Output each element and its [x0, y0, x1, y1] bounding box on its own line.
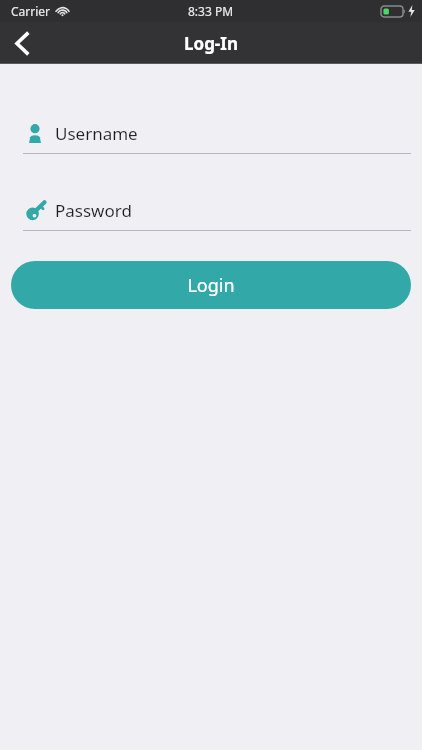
staticText: Username	[55, 122, 138, 145]
button[interactable]: Username	[0, 121, 422, 154]
staticText: 8:33 PM	[188, 3, 234, 19]
button[interactable]: Password	[0, 198, 422, 231]
button[interactable]: Back	[0, 22, 44, 64]
staticText: Log-In	[184, 32, 238, 55]
button[interactable]: Login	[11, 261, 411, 309]
staticText: Carrier	[11, 3, 51, 19]
staticText: Password	[55, 199, 132, 222]
staticText: Login	[187, 273, 235, 298]
